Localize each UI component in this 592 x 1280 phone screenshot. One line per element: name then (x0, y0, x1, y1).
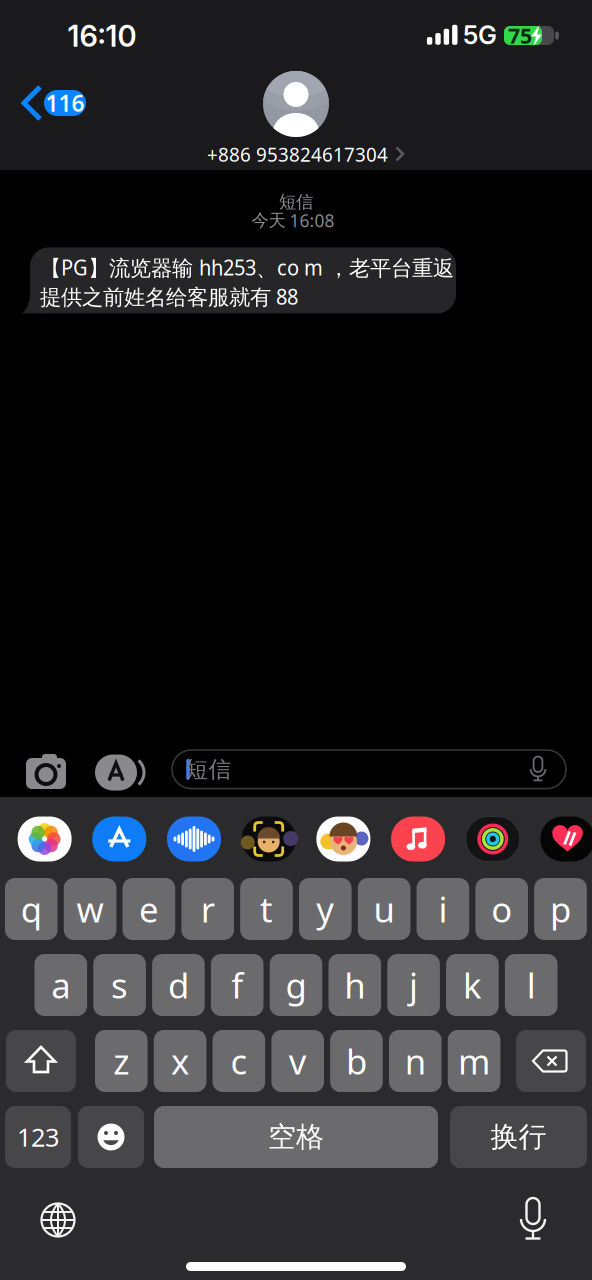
staticText: 16:10 (67, 18, 136, 54)
button[interactable]: Numbers (5, 1106, 71, 1168)
button[interactable]: Camera (24, 754, 68, 790)
button[interactable]: Emoji (78, 1106, 144, 1168)
staticText: 换行 (490, 1120, 546, 1154)
staticText: e (139, 886, 159, 932)
staticText: h (344, 962, 365, 1008)
button[interactable]: c (213, 1030, 265, 1092)
button[interactable]: e (123, 878, 175, 940)
button[interactable]: Back (17, 83, 95, 123)
staticText: n (405, 1038, 426, 1084)
staticText: 短信 (185, 756, 231, 783)
staticText: r (201, 886, 215, 932)
button[interactable]: z (95, 1030, 148, 1092)
button[interactable]: Next keyboard (36, 1198, 80, 1242)
button[interactable]: a (34, 954, 87, 1016)
staticText: 今天 (251, 210, 285, 231)
staticText: 5G (463, 20, 497, 50)
button[interactable]: b (330, 1030, 383, 1092)
button[interactable]: Dictation (511, 1195, 555, 1247)
button[interactable]: r (181, 878, 234, 940)
staticText: 空格 (268, 1120, 324, 1154)
staticText: v (289, 1038, 307, 1084)
button[interactable]: u (358, 878, 410, 940)
staticText: k (463, 962, 482, 1008)
staticText: o (491, 886, 512, 932)
button[interactable]: w (64, 878, 116, 940)
button[interactable]: Space (154, 1106, 438, 1168)
staticText: x (171, 1038, 189, 1084)
button[interactable]: Apple Music (391, 816, 445, 861)
button[interactable]: x (154, 1030, 206, 1092)
button[interactable]: d (152, 954, 205, 1016)
staticText: 短信 (279, 191, 313, 213)
button[interactable]: f (211, 954, 263, 1016)
button[interactable]: p (534, 878, 587, 940)
staticText: 123 (17, 1120, 59, 1154)
button[interactable]: Message field (172, 750, 566, 788)
staticText: s (111, 962, 128, 1008)
staticText: t (260, 886, 273, 932)
staticText: 【PG】流览器输 hh253、co m ，老平台重返 (40, 253, 454, 282)
button[interactable]: App Store (92, 816, 146, 861)
staticText: m (458, 1038, 490, 1084)
button[interactable]: s (93, 954, 146, 1016)
staticText: z (113, 1038, 129, 1084)
staticText: c (230, 1038, 247, 1084)
button[interactable]: y (299, 878, 352, 940)
button[interactable]: Return (450, 1106, 587, 1168)
button[interactable]: i (417, 878, 469, 940)
button[interactable]: o (475, 878, 528, 940)
staticText: l (527, 962, 536, 1008)
staticText: f (231, 962, 243, 1008)
button[interactable]: iMessage apps (94, 753, 152, 791)
button[interactable]: Stickers (316, 816, 370, 861)
staticText: y (316, 886, 334, 932)
button[interactable]: k (446, 954, 499, 1016)
staticText: b (346, 1038, 367, 1084)
button[interactable]: t (240, 878, 293, 940)
staticText: a (51, 962, 70, 1008)
staticText: p (550, 886, 571, 932)
button[interactable]: Contact info (207, 140, 405, 168)
button[interactable]: m (448, 1030, 500, 1092)
staticText: 16:08 (289, 209, 334, 232)
button[interactable]: j (387, 954, 440, 1016)
button[interactable]: q (5, 878, 58, 940)
staticText: 75 (508, 21, 532, 50)
button[interactable]: Delete (516, 1030, 586, 1092)
staticText: i (438, 886, 447, 932)
button[interactable]: h (328, 954, 381, 1016)
button[interactable]: Shift (6, 1030, 76, 1092)
button[interactable]: Voice (167, 816, 221, 861)
button[interactable]: Memoji Stickers (242, 816, 296, 861)
staticText: j (409, 962, 418, 1008)
button[interactable]: v (271, 1030, 324, 1092)
button[interactable]: g (270, 954, 322, 1016)
button[interactable]: Digital Touch (540, 816, 592, 861)
button[interactable]: Contact (263, 71, 329, 137)
button[interactable]: Activity (466, 816, 520, 861)
staticText: 提供之前姓名给客服就有 88 (40, 282, 298, 311)
button[interactable]: n (389, 1030, 442, 1092)
button[interactable]: l (505, 954, 557, 1016)
staticText: 116 (45, 88, 84, 118)
staticText: g (285, 962, 306, 1008)
staticText: u (374, 886, 395, 932)
staticText: +886 953824617304 (207, 140, 388, 168)
staticText: w (77, 886, 104, 932)
staticText: q (21, 886, 42, 932)
staticText: d (168, 962, 189, 1008)
button[interactable]: Photos (18, 816, 72, 861)
